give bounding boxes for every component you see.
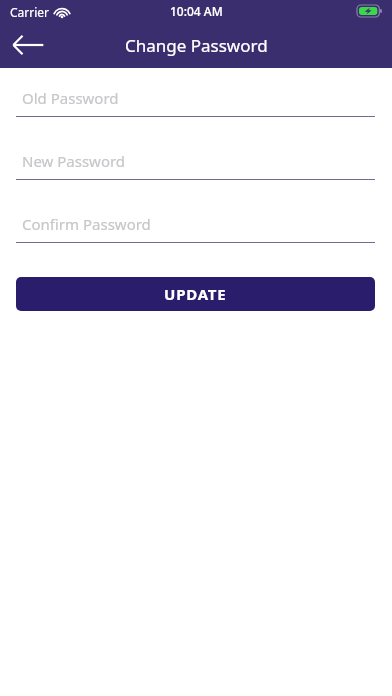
staticText: Confirm Password [22, 214, 151, 234]
staticText: Change Password [125, 34, 268, 57]
staticText: 10:04 AM [170, 3, 223, 19]
button[interactable]: UPDATE [16, 277, 375, 311]
button[interactable]: Confirm Password [16, 208, 375, 243]
staticText: UPDATE [164, 284, 227, 304]
staticText: Old Password [22, 88, 119, 108]
staticText: Carrier [10, 4, 50, 20]
staticText: New Password [22, 151, 126, 171]
button[interactable]: Old Password [16, 82, 375, 117]
button[interactable]: New Password [16, 145, 375, 180]
button[interactable]: Back [0, 22, 56, 68]
